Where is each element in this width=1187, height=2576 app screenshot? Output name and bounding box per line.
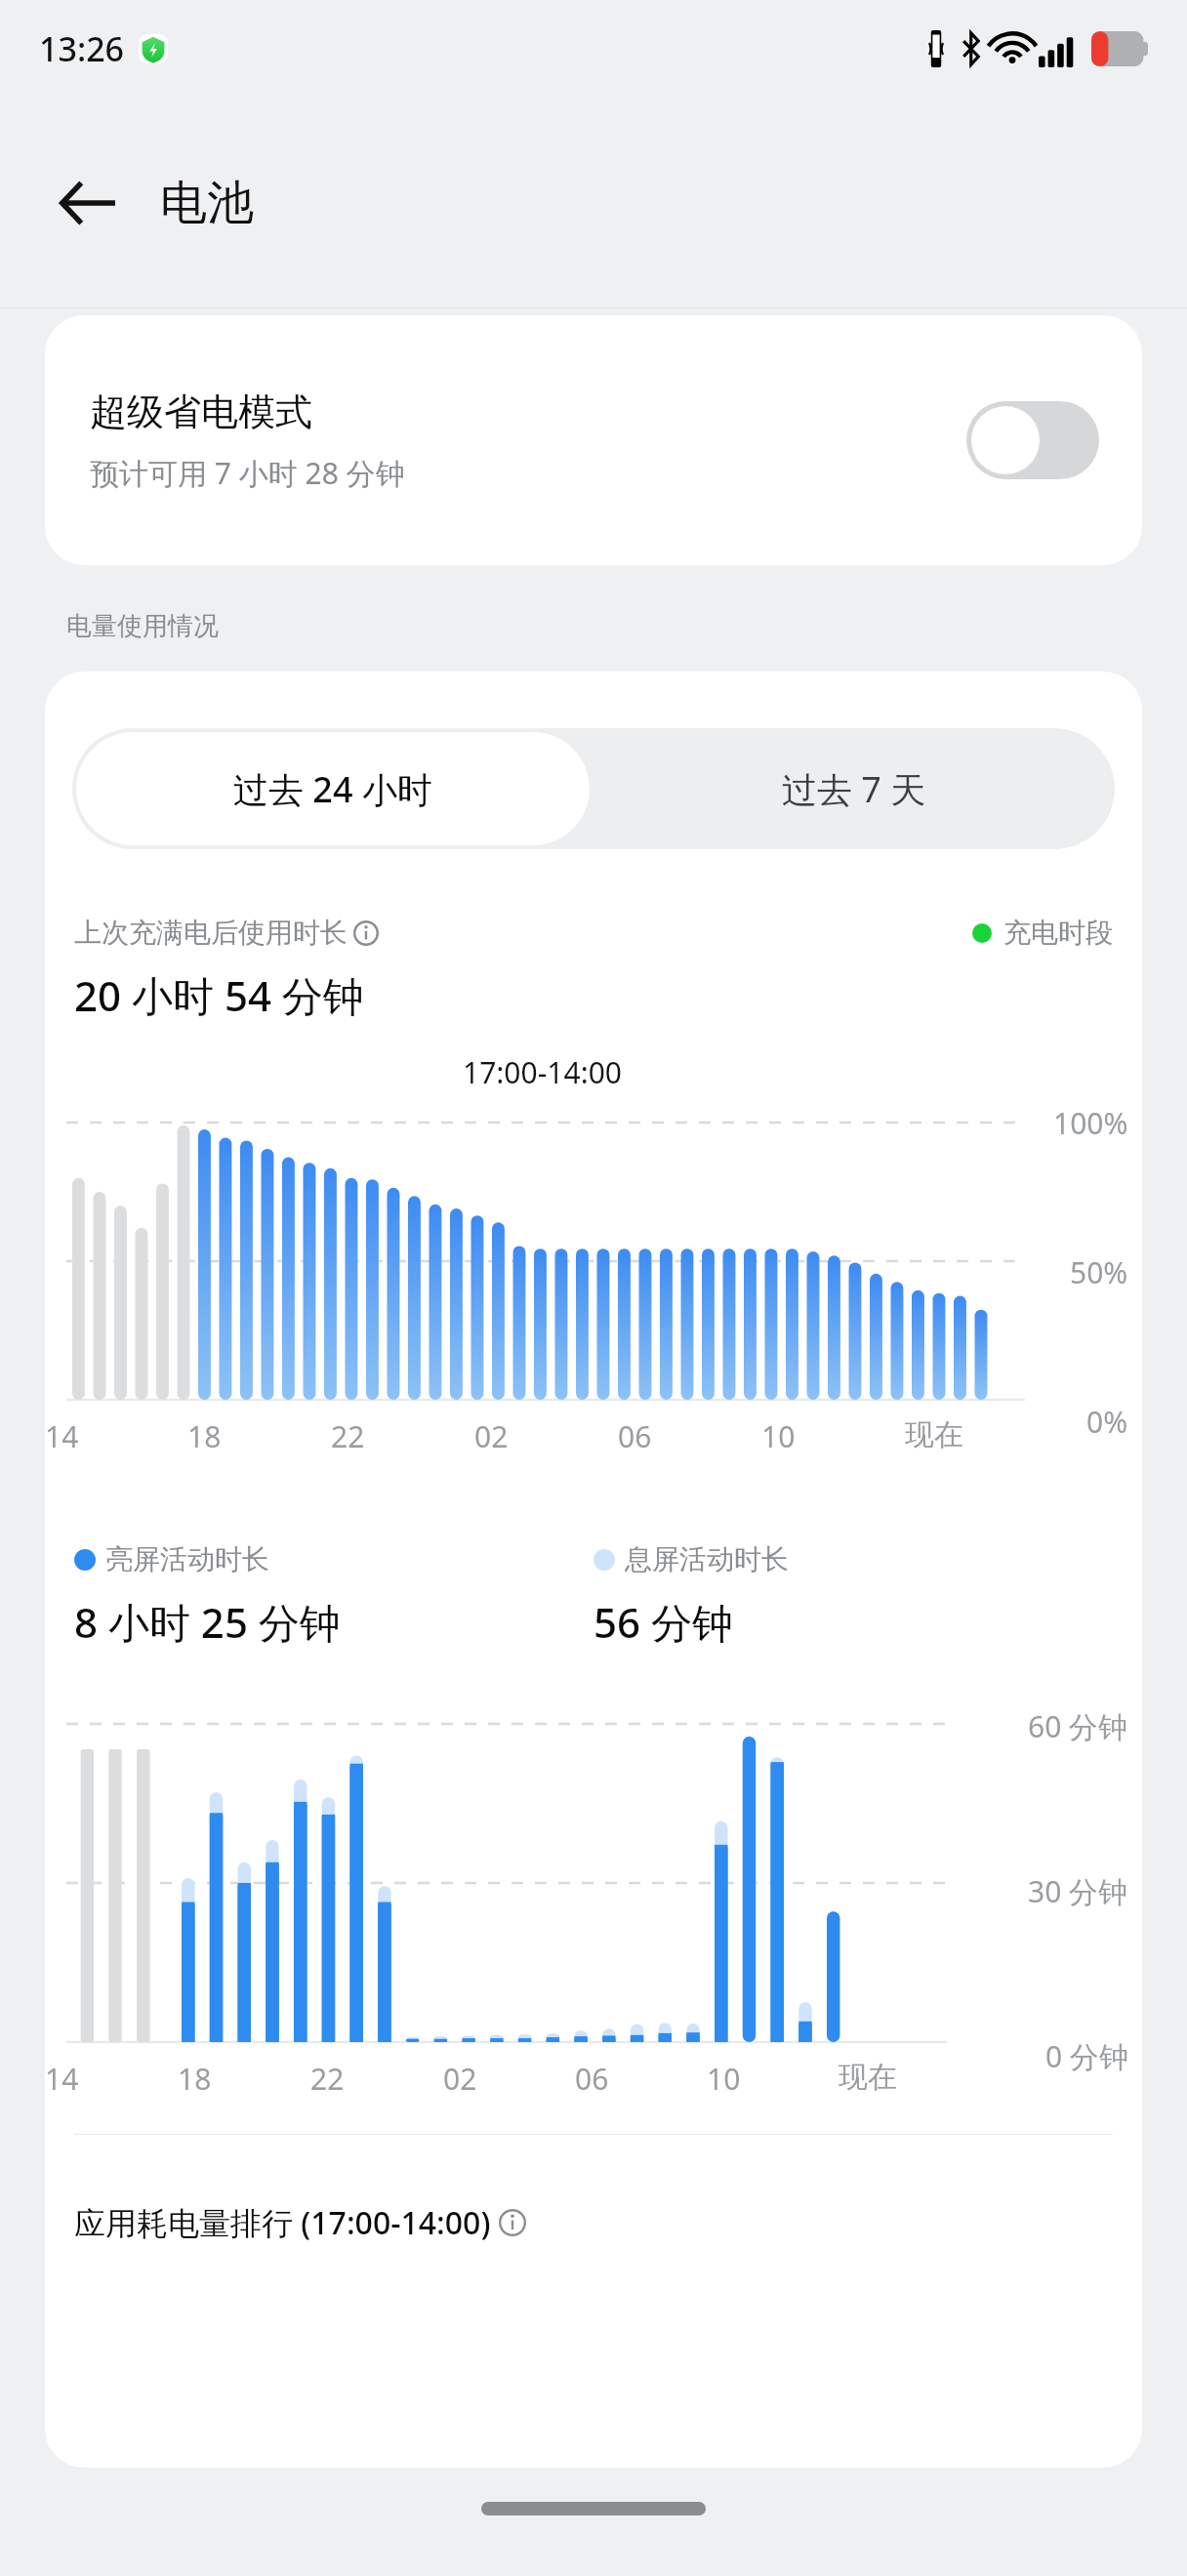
staticText: 60 分钟	[1028, 1706, 1128, 1746]
staticText: 应用耗电量排行 (17:00-14:00)	[74, 2201, 491, 2244]
staticText: 超级省电模式	[90, 388, 312, 435]
button[interactable]: 过去 7 天	[593, 728, 1115, 849]
staticText: 10	[707, 2059, 741, 2099]
staticText: 14	[45, 2059, 79, 2099]
staticText: 上次充满电后使用时长	[74, 916, 348, 950]
button[interactable]: 应用耗电量排行 (17:00-14:00)	[74, 2201, 1113, 2244]
staticText: 06	[618, 1416, 652, 1456]
staticText: 8 小时 25 分钟	[74, 1594, 341, 1650]
staticText: 0%	[1086, 1402, 1128, 1442]
staticText: 02	[443, 2059, 477, 2099]
staticText: 电池	[160, 174, 254, 232]
staticText: 充电时段	[1003, 916, 1113, 950]
staticText: 56 分钟	[593, 1594, 733, 1650]
staticText: 过去 24 小时	[233, 765, 432, 813]
staticText: 10	[761, 1416, 796, 1456]
staticText: 电量使用情况	[66, 610, 219, 642]
staticText: 22	[310, 2059, 345, 2099]
staticText: 18	[187, 1416, 222, 1456]
staticText: 50%	[1070, 1252, 1128, 1292]
staticText: 06	[575, 2059, 609, 2099]
staticText: 20 小时 54 分钟	[74, 967, 364, 1023]
button[interactable]: 超级省电模式 开关	[966, 401, 1099, 479]
staticText: 14	[45, 1416, 79, 1456]
button[interactable]: 超级省电模式	[45, 315, 1142, 565]
staticText: 0 分钟	[1045, 2036, 1128, 2076]
staticText: 13:26	[39, 26, 125, 71]
button[interactable]: Back	[41, 156, 135, 250]
staticText: 现在	[839, 2059, 897, 2096]
button[interactable]: 过去 24 小时	[76, 732, 590, 845]
staticText: 预计可用 7 小时 28 分钟	[90, 453, 405, 493]
staticText: 息屏活动时长	[625, 1542, 789, 1576]
staticText: 100%	[1053, 1103, 1128, 1143]
staticText: 17:00-14:00	[463, 1052, 623, 1092]
staticText: 30 分钟	[1028, 1871, 1128, 1911]
staticText: 过去 7 天	[782, 765, 926, 813]
staticText: 现在	[905, 1416, 963, 1453]
staticText: 亮屏活动时长	[105, 1542, 269, 1576]
staticText: 18	[178, 2059, 212, 2099]
staticText: 02	[474, 1416, 509, 1456]
staticText: 22	[331, 1416, 365, 1456]
